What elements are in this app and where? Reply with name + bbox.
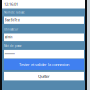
staticText: Nom de la base bbox=[4, 11, 25, 14]
staticText: 12:16:01 bbox=[4, 2, 18, 7]
staticText: BaseBdTest bbox=[5, 18, 20, 22]
staticText: admin bbox=[5, 35, 13, 39]
staticText: •••••••••• bbox=[5, 52, 15, 56]
staticText: Utilisateur bbox=[4, 28, 18, 31]
staticText: Quitter bbox=[38, 73, 50, 79]
staticText: Mot de passe bbox=[4, 44, 22, 48]
button[interactable]: Quitter bbox=[4, 72, 84, 80]
staticText: Tester et valider la connexion bbox=[19, 62, 69, 67]
button[interactable]: Tester et valider la connexion bbox=[4, 59, 84, 70]
